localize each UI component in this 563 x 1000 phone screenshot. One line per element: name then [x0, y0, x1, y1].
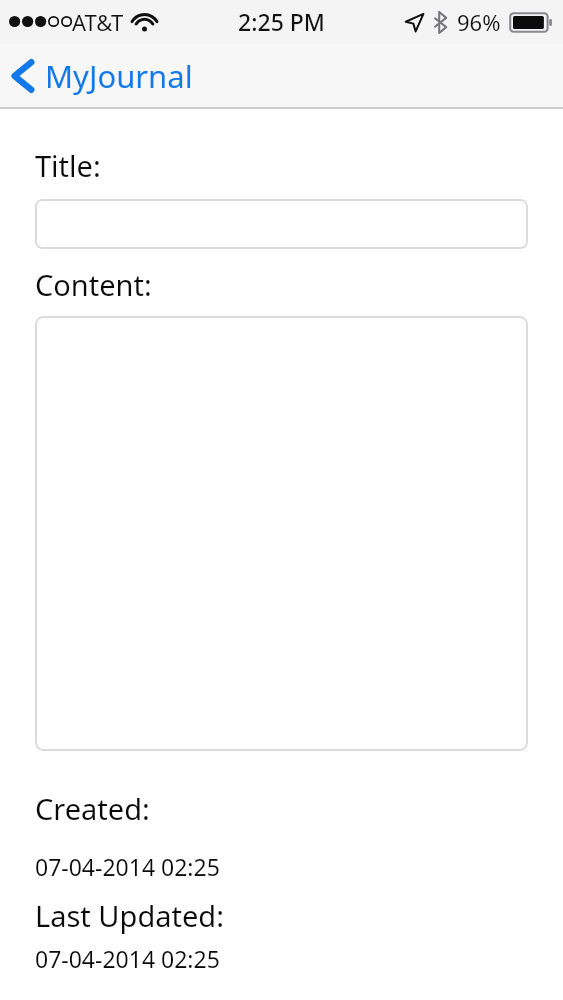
staticText: Title:: [35, 146, 101, 185]
staticText: MyJournal: [45, 55, 193, 97]
staticText: 96%: [457, 7, 501, 37]
staticText: AT&T: [72, 7, 124, 37]
button[interactable]: Content input field: [35, 316, 528, 751]
staticText: 07-04-2014 02:25: [35, 851, 220, 882]
staticText: Last Updated:: [35, 896, 224, 935]
staticText: Created:: [35, 789, 150, 828]
staticText: 2:25 PM: [0, 6, 563, 37]
staticText: Content:: [35, 265, 152, 304]
button[interactable]: Title input field: [35, 199, 528, 249]
button[interactable]: Back to MyJournal: [0, 44, 207, 107]
staticText: 07-04-2014 02:25: [35, 943, 220, 974]
